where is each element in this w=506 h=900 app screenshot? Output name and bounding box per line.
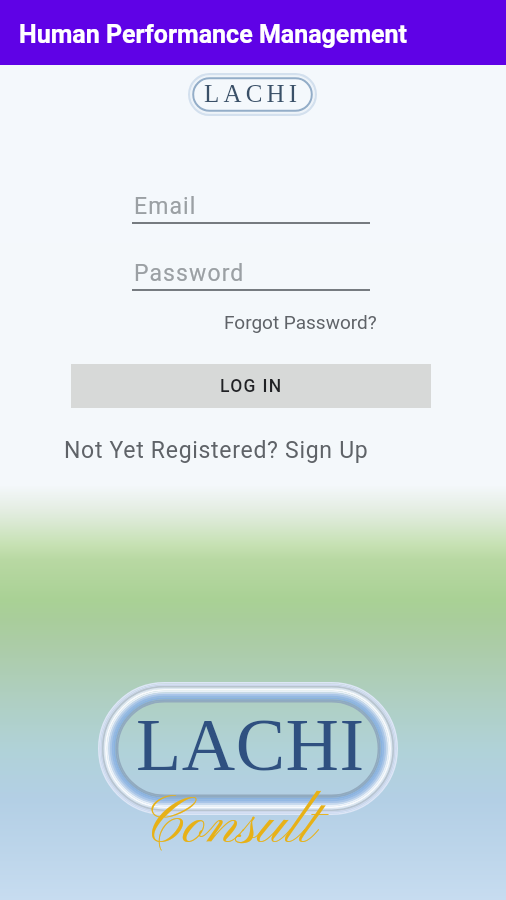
staticText: Not Yet Registered? Sign Up: [64, 437, 369, 464]
staticText: Email: [134, 193, 197, 220]
button[interactable]: Password: [132, 246, 370, 291]
button[interactable]: LOG IN: [71, 364, 431, 408]
button[interactable]: Forgot Password?: [223, 311, 378, 333]
staticText: Password: [134, 260, 245, 287]
button[interactable]: Human Performance Management: [0, 0, 506, 65]
button[interactable]: Email: [132, 179, 370, 224]
staticText: Consult: [142, 786, 315, 867]
staticText: LACHI: [136, 704, 365, 786]
staticText: Forgot Password?: [224, 311, 377, 333]
staticText: LOG IN: [220, 376, 283, 397]
staticText: LACHI: [204, 80, 302, 108]
staticText: Human Performance Management: [19, 20, 407, 49]
button[interactable]: Not Yet Registered? Sign Up: [64, 437, 369, 464]
